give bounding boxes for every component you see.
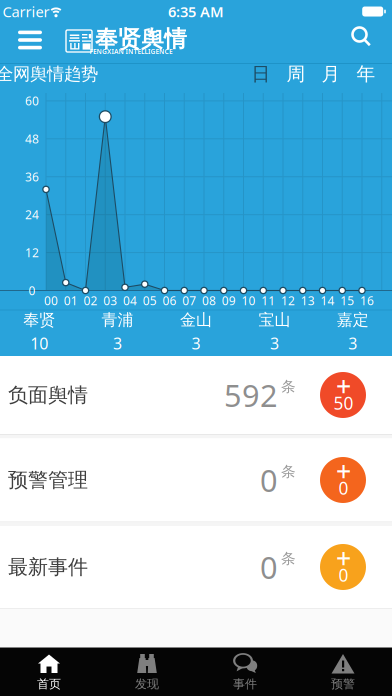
button[interactable]: 最新事件 bbox=[0, 526, 392, 608]
staticText: 10 bbox=[30, 333, 48, 354]
staticText: 10 bbox=[241, 292, 255, 308]
staticText: 条 bbox=[281, 378, 296, 396]
staticText: FENGXIAN INTELLIGENCE bbox=[48, 43, 214, 60]
staticText: 奉贤 bbox=[23, 310, 55, 330]
staticText: + bbox=[336, 453, 351, 489]
staticText: 12 bbox=[25, 245, 39, 260]
button[interactable]: 事件 bbox=[196, 648, 294, 696]
staticText: 6:35 AM bbox=[168, 2, 224, 21]
staticText: 条 bbox=[281, 550, 296, 568]
staticText: 全网舆情趋势 bbox=[0, 63, 98, 85]
staticText: 日 bbox=[251, 62, 270, 85]
staticText: 条 bbox=[281, 463, 296, 481]
staticText: Carrier bbox=[2, 2, 49, 21]
staticText: 3 bbox=[113, 333, 122, 354]
staticText: 48 bbox=[25, 131, 39, 147]
staticText: 03 bbox=[103, 292, 117, 308]
button[interactable]: 周 bbox=[278, 63, 313, 85]
staticText: 奉贤舆情 bbox=[95, 25, 187, 53]
staticText: 0 bbox=[28, 282, 35, 298]
staticText: 16 bbox=[360, 292, 374, 308]
staticText: 年 bbox=[356, 62, 375, 85]
staticText: 05 bbox=[143, 292, 157, 308]
button[interactable]: 日 bbox=[243, 63, 278, 85]
staticText: 12 bbox=[281, 292, 295, 308]
staticText: 04 bbox=[123, 292, 137, 308]
staticText: 15 bbox=[340, 292, 354, 308]
staticText: 0 bbox=[260, 547, 278, 587]
button[interactable]: Menu bbox=[12, 25, 48, 55]
staticText: 首页 bbox=[37, 676, 61, 691]
staticText: 50 bbox=[333, 391, 353, 414]
staticText: 事件 bbox=[233, 676, 257, 691]
staticText: 592 bbox=[224, 375, 278, 415]
staticText: 11 bbox=[261, 292, 275, 308]
staticText: 周 bbox=[286, 62, 305, 85]
staticText: 36 bbox=[25, 169, 39, 185]
staticText: 金山 bbox=[180, 310, 212, 330]
staticText: 嘉定 bbox=[337, 310, 369, 330]
staticText: 07 bbox=[182, 292, 196, 308]
staticText: 预警管理 bbox=[8, 468, 88, 492]
staticText: 预警 bbox=[331, 676, 355, 691]
staticText: 3 bbox=[348, 333, 357, 354]
staticText: 60 bbox=[25, 93, 39, 109]
button[interactable]: 月 bbox=[313, 63, 348, 85]
button[interactable]: 预警管理 bbox=[0, 438, 392, 521]
staticText: 09 bbox=[222, 292, 236, 308]
staticText: 3 bbox=[191, 333, 200, 354]
button[interactable]: Search bbox=[347, 26, 377, 56]
staticText: 负面舆情 bbox=[8, 383, 88, 407]
staticText: 月 bbox=[321, 62, 340, 85]
staticText: 02 bbox=[83, 292, 97, 308]
staticText: 13 bbox=[301, 292, 315, 308]
staticText: 01 bbox=[64, 292, 78, 308]
button[interactable]: 首页 bbox=[0, 648, 98, 696]
staticText: 最新事件 bbox=[8, 555, 88, 579]
staticText: + bbox=[336, 540, 351, 576]
staticText: 06 bbox=[162, 292, 176, 308]
staticText: 08 bbox=[202, 292, 216, 308]
staticText: 00 bbox=[44, 292, 58, 308]
staticText: 青浦 bbox=[102, 310, 134, 330]
staticText: + bbox=[336, 368, 351, 404]
staticText: 宝山 bbox=[258, 310, 290, 330]
button[interactable]: 发现 bbox=[98, 648, 196, 696]
staticText: 发现 bbox=[135, 676, 159, 691]
staticText: 14 bbox=[320, 292, 334, 308]
button[interactable]: 负面舆情 bbox=[0, 356, 392, 434]
staticText: 24 bbox=[25, 207, 39, 223]
button[interactable]: 预警 bbox=[294, 648, 392, 696]
staticText: 0 bbox=[338, 476, 348, 499]
staticText: 3 bbox=[270, 333, 279, 354]
button[interactable]: 年 bbox=[348, 63, 383, 85]
staticText: 0 bbox=[338, 563, 348, 586]
staticText: 0 bbox=[260, 460, 278, 500]
